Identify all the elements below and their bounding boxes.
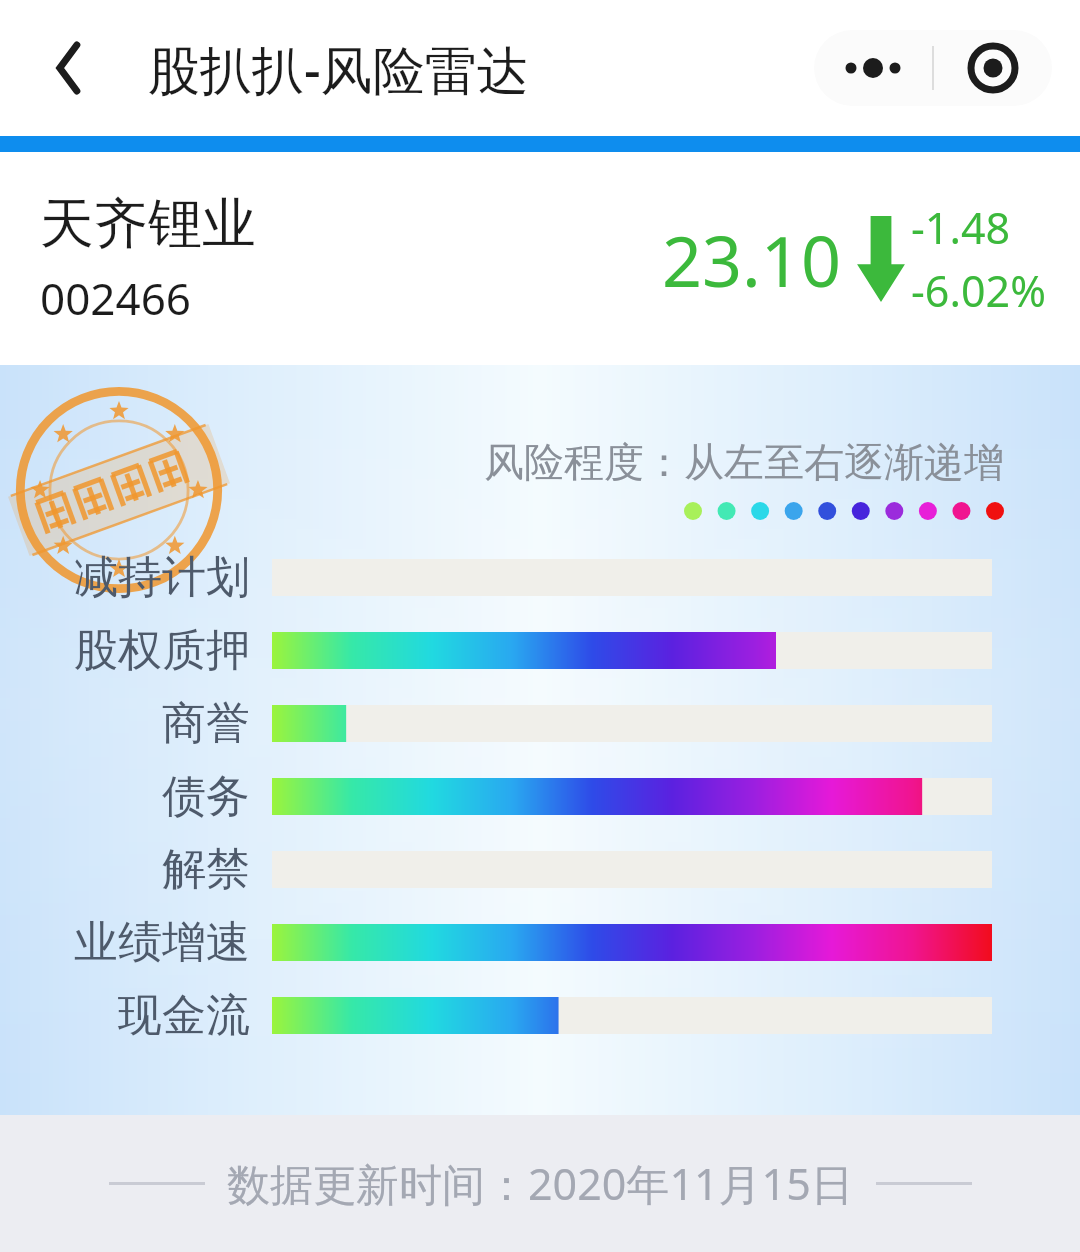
button[interactable]: 解禁	[0, 833, 1080, 906]
staticText: 23.10	[662, 212, 841, 307]
button[interactable]: 股权质押	[0, 614, 1080, 687]
button[interactable]: 债务	[0, 760, 1080, 833]
button[interactable]: 减持计划	[0, 541, 1080, 614]
staticText: 002466	[40, 268, 192, 328]
staticText: 现金流	[0, 988, 250, 1043]
staticText: 股扒扒-风险雷达	[148, 33, 529, 104]
staticText: 天齐锂业	[40, 190, 256, 258]
staticText: 股权质押	[0, 623, 250, 678]
button[interactable]: 业绩增速	[0, 906, 1080, 979]
button[interactable]: Close	[934, 30, 1052, 106]
staticText: 解禁	[0, 842, 250, 897]
staticText: 商誉	[0, 696, 250, 751]
staticText: 数据更新时间：2020年11月15日	[227, 1154, 854, 1213]
staticText: 债务	[0, 769, 250, 824]
button[interactable]: 现金流	[0, 979, 1080, 1052]
staticText: 风险程度：从左至右逐渐递增	[484, 437, 1004, 487]
button[interactable]: 商誉	[0, 687, 1080, 760]
button[interactable]: 天齐锂业	[0, 152, 1080, 365]
button[interactable]: More	[814, 30, 932, 106]
staticText: -1.48	[911, 198, 1011, 257]
staticText: 业绩增速	[0, 915, 250, 970]
staticText: -6.02%	[911, 261, 1046, 320]
button[interactable]: Back	[28, 32, 100, 104]
staticText: 减持计划	[0, 550, 250, 605]
